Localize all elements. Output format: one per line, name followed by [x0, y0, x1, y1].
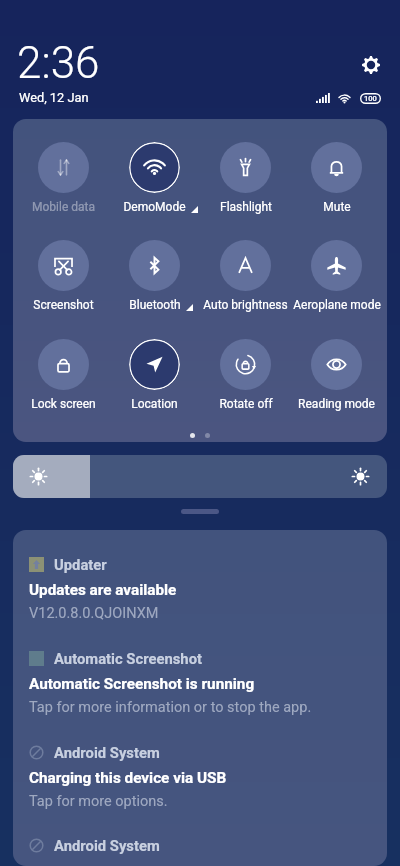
- staticText: Tap for more information or to stop the …: [29, 699, 312, 716]
- button[interactable]: Rotate off: [200, 339, 291, 411]
- button[interactable]: Aeroplane mode: [291, 240, 382, 312]
- staticText: V12.0.8.0.QJOINXM: [29, 605, 159, 622]
- staticText: Android System: [54, 744, 160, 761]
- staticText: Android System: [54, 837, 160, 854]
- button[interactable]: Mobile data: [18, 142, 109, 214]
- button[interactable]: Android System: [13, 811, 387, 866]
- button[interactable]: DemoMode: [109, 142, 200, 214]
- staticText: Screenshot: [33, 298, 94, 312]
- staticText: Automatic Screenshot is running: [29, 675, 255, 693]
- staticText: Automatic Screenshot: [54, 650, 202, 667]
- staticText: Flashlight: [220, 200, 272, 214]
- staticText: Bluetooth: [129, 298, 181, 312]
- button[interactable]: Location: [109, 339, 200, 411]
- staticText: Charging this device via USB: [29, 769, 227, 787]
- staticText: Mute: [323, 200, 351, 214]
- button[interactable]: Brightness: [13, 455, 387, 498]
- button[interactable]: Automatic Screenshot: [13, 624, 387, 714]
- button[interactable]: Updater: [13, 530, 387, 620]
- staticText: Tap for more options.: [29, 793, 168, 810]
- button[interactable]: Settings: [356, 50, 385, 79]
- staticText: Mobile data: [32, 200, 95, 214]
- button[interactable]: Screenshot: [18, 240, 109, 312]
- staticText: 2:36: [17, 37, 100, 89]
- staticText: Rotate off: [219, 397, 273, 411]
- staticText: Lock screen: [31, 397, 96, 411]
- staticText: 100: [364, 94, 377, 103]
- button[interactable]: Reading mode: [291, 339, 382, 411]
- staticText: Updater: [54, 556, 107, 573]
- button[interactable]: Auto brightness: [200, 240, 291, 312]
- button[interactable]: Android System: [13, 718, 387, 808]
- button[interactable]: Mute: [291, 142, 382, 214]
- staticText: Updates are available: [29, 581, 177, 599]
- staticText: Reading mode: [298, 397, 375, 411]
- button[interactable]: Flashlight: [200, 142, 291, 214]
- staticText: Wed, 12 Jan: [19, 90, 89, 105]
- staticText: Location: [131, 397, 178, 411]
- staticText: Aeroplane mode: [293, 298, 381, 312]
- button[interactable]: Lock screen: [18, 339, 109, 411]
- button[interactable]: Bluetooth: [109, 240, 200, 312]
- staticText: Auto brightness: [203, 298, 288, 312]
- staticText: DemoMode: [123, 200, 186, 214]
